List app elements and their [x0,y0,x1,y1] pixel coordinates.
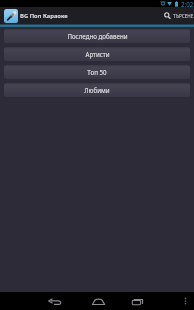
button[interactable]: Топ 50 [4,65,190,79]
staticText: BG Поп Караоке [20,12,68,20]
button[interactable]: Любими [4,83,190,97]
button[interactable]: App icon [4,9,18,23]
button[interactable]: More options [174,292,194,310]
staticText: ТЪРСЕНЕ [173,13,194,19]
staticText: Артисти [85,50,110,58]
button[interactable]: Артисти [4,47,190,61]
staticText: Последно добавени [67,32,128,40]
staticText: Любими [84,86,110,94]
button[interactable]: ТЪРСЕНЕ [159,7,194,24]
button[interactable]: Home [87,292,109,310]
staticText: Топ 50 [87,68,107,76]
button[interactable]: Последно добавени [4,29,190,43]
staticText: 2:02 [181,0,194,7]
button[interactable]: Back [44,292,66,310]
button[interactable]: Recent apps [127,292,149,310]
